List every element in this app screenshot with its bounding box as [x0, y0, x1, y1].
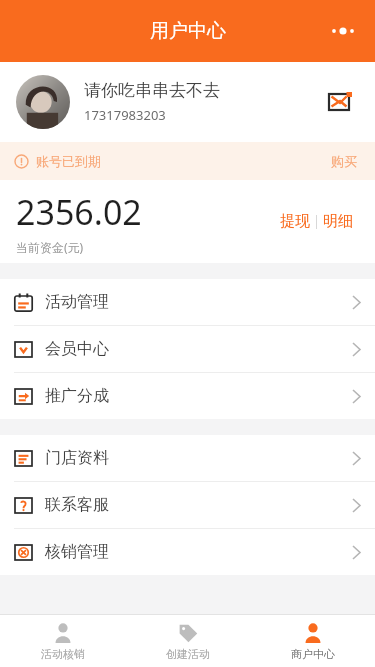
button[interactable]: 活动管理	[0, 279, 375, 325]
staticText: 提现	[280, 212, 310, 231]
staticText: 17317983203	[84, 106, 166, 124]
button[interactable]: 商户中心	[250, 615, 375, 667]
staticText: 当前资金(元)	[16, 239, 84, 255]
button[interactable]: Messages	[321, 83, 359, 121]
staticText: 活动核销	[41, 647, 85, 661]
button[interactable]: 提现	[274, 206, 316, 237]
button[interactable]: 活动核销	[0, 615, 125, 667]
button[interactable]: 明细	[317, 206, 359, 237]
staticText: 请你吃串串去不去	[84, 80, 220, 101]
staticText: 明细	[323, 212, 353, 231]
staticText: 会员中心	[45, 339, 109, 359]
staticText: 账号已到期	[36, 153, 101, 169]
button[interactable]: 联系客服	[0, 482, 375, 528]
staticText: 购买	[331, 153, 357, 169]
staticText: 联系客服	[45, 495, 109, 515]
staticText: 商户中心	[291, 647, 335, 661]
button[interactable]: 会员中心	[0, 326, 375, 372]
staticText: 活动管理	[45, 292, 109, 312]
button[interactable]: More options	[323, 11, 363, 51]
staticText: 创建活动	[166, 647, 210, 661]
button[interactable]: 门店资料	[0, 435, 375, 481]
button[interactable]: 核销管理	[0, 529, 375, 575]
button[interactable]: 创建活动	[125, 615, 250, 667]
staticText: 核销管理	[45, 542, 109, 562]
button[interactable]: 请你吃串串去不去	[0, 62, 375, 142]
button[interactable]: 推广分成	[0, 373, 375, 419]
button[interactable]: 购买	[327, 149, 361, 173]
staticText: 2356.02	[16, 189, 142, 235]
staticText: 用户中心	[150, 19, 226, 43]
staticText: 门店资料	[45, 448, 109, 468]
staticText: 推广分成	[45, 386, 109, 406]
